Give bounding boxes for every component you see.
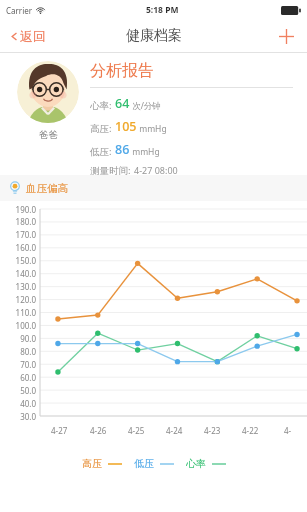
staticText: 30.0 xyxy=(2,411,36,422)
staticText: 190.0 xyxy=(2,204,36,215)
staticText: 5:18 PM xyxy=(146,4,179,16)
staticText: 4-27 xyxy=(51,425,68,436)
staticText: 血压偏高 xyxy=(26,182,68,195)
staticText: mmHg xyxy=(130,146,160,158)
staticText: mmHg xyxy=(137,123,167,135)
staticText: 健康档案 xyxy=(126,27,182,45)
staticText: 130.0 xyxy=(2,281,36,292)
staticText: 110.0 xyxy=(2,307,36,318)
staticText: 86 xyxy=(115,141,130,158)
staticText: 4-23 xyxy=(204,425,221,436)
staticText: 低压 xyxy=(134,457,154,470)
staticText: 高压 xyxy=(82,457,102,470)
staticText: 60.0 xyxy=(2,372,36,383)
staticText: 70.0 xyxy=(2,359,36,370)
staticText: 返回 xyxy=(20,28,46,44)
staticText: 180.0 xyxy=(2,216,36,227)
staticText: 64 xyxy=(115,95,130,112)
staticText: 4-27 08:00 xyxy=(134,164,178,175)
staticText: 80.0 xyxy=(2,346,36,357)
staticText: 心率 xyxy=(186,457,206,470)
staticText: 高压: xyxy=(90,122,115,135)
staticText: 爸爸 xyxy=(39,129,58,141)
staticText: 测量时间: xyxy=(90,164,134,175)
button[interactable]: Add record xyxy=(273,23,299,49)
staticText: Carrier xyxy=(6,5,33,16)
button[interactable]: 返回 xyxy=(6,25,50,47)
button[interactable]: 心率 xyxy=(184,453,228,474)
staticText: 4-24 xyxy=(166,425,183,436)
staticText: 分析报告 xyxy=(90,61,154,81)
staticText: 150.0 xyxy=(2,255,36,266)
staticText: 4-22 xyxy=(242,425,259,436)
staticText: 120.0 xyxy=(2,294,36,305)
button[interactable]: 低压 xyxy=(132,453,176,474)
staticText: 160.0 xyxy=(2,242,36,253)
staticText: 140.0 xyxy=(2,268,36,279)
button[interactable]: 血压偏高 xyxy=(0,175,307,201)
staticText: 4- xyxy=(284,425,292,436)
staticText: 低压: xyxy=(90,145,115,158)
staticText: 105 xyxy=(115,118,137,135)
button[interactable]: 高压 xyxy=(80,453,124,474)
staticText: 4-26 xyxy=(90,425,107,436)
staticText: 4-25 xyxy=(128,425,145,436)
button[interactable]: 爸爸 xyxy=(10,61,86,141)
staticText: 90.0 xyxy=(2,333,36,344)
staticText: 50.0 xyxy=(2,385,36,396)
staticText: 100.0 xyxy=(2,320,36,331)
staticText: 40.0 xyxy=(2,398,36,409)
staticText: 170.0 xyxy=(2,229,36,240)
staticText: 次/分钟 xyxy=(130,100,161,112)
staticText: 心率: xyxy=(90,99,115,112)
